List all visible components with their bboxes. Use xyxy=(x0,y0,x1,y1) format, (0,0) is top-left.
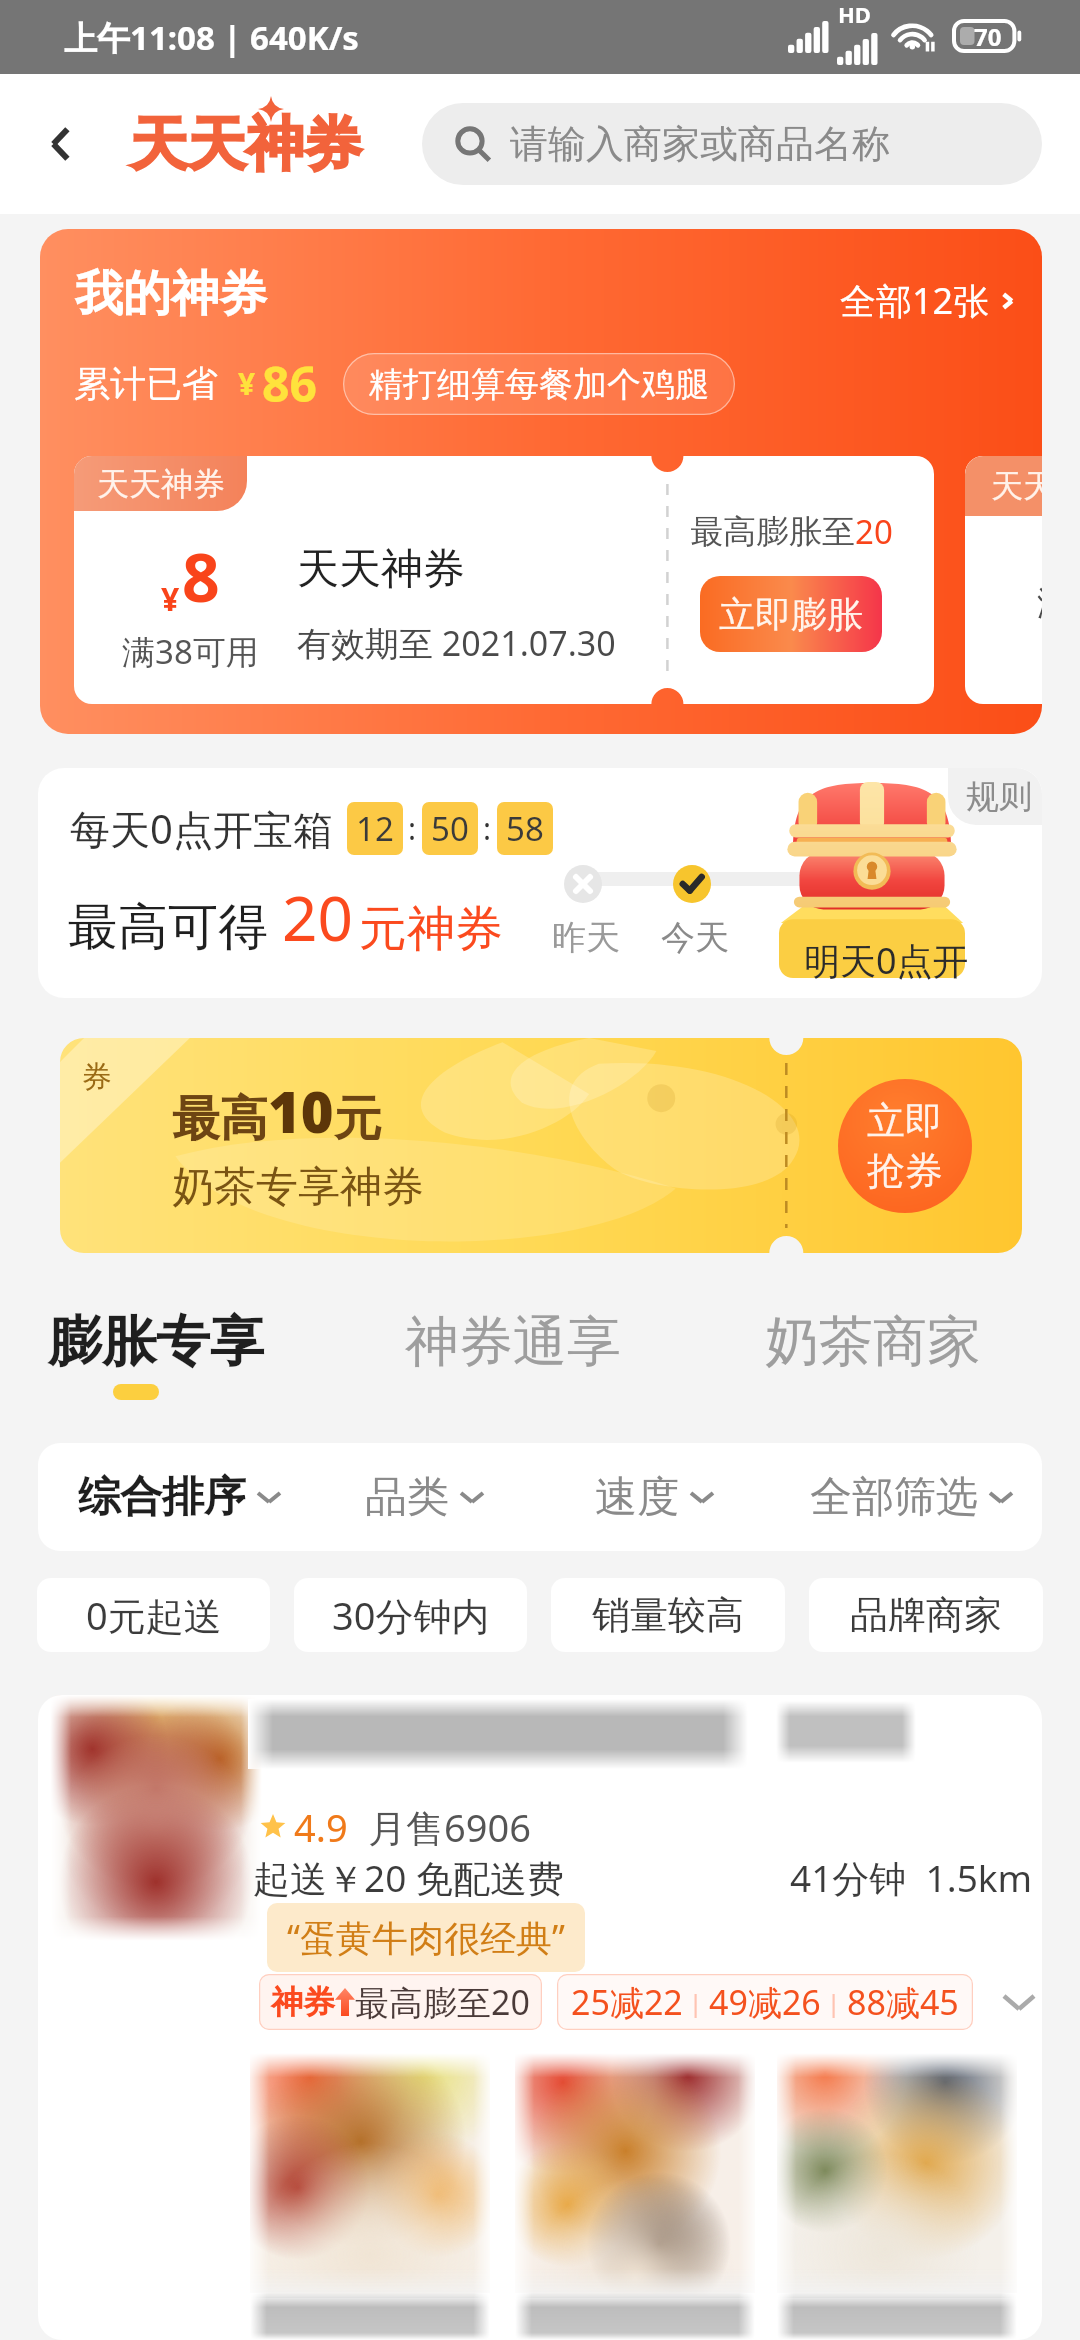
staticText: | xyxy=(689,1986,703,2019)
button[interactable]: 展开更多优惠 xyxy=(991,1974,1042,2030)
staticText: 累计已省 xyxy=(74,361,218,406)
button[interactable]: 全部12张 xyxy=(840,276,1020,325)
staticText: 上午11:08 | 640K/s xyxy=(64,15,359,60)
button[interactable]: 天天神券 8元优惠券 xyxy=(74,456,934,704)
staticText: 30分钟内 xyxy=(332,1589,490,1641)
button[interactable]: 奶茶商家 xyxy=(765,1296,981,1384)
staticText: 86 xyxy=(262,351,317,416)
staticText: 速度 xyxy=(595,1471,679,1524)
button[interactable]: 品类 xyxy=(365,1443,485,1551)
staticText: 最高可得 xyxy=(68,896,268,959)
staticText: 8 xyxy=(182,531,220,621)
staticText: : xyxy=(408,808,417,849)
staticText: 12 xyxy=(356,806,394,851)
staticText: : xyxy=(483,808,492,849)
staticText: 抢券 xyxy=(867,1147,943,1195)
staticText: 最高膨胀至 xyxy=(690,511,855,553)
button[interactable]: 速度 xyxy=(595,1443,715,1551)
staticText: 请输入商家或商品名称 xyxy=(510,120,890,168)
button[interactable]: 下一张神券 xyxy=(965,456,1042,704)
staticText: 25减22 xyxy=(571,1979,683,2025)
staticText: 全部12张 xyxy=(840,276,990,325)
button[interactable]: 立即 xyxy=(838,1079,972,1213)
staticText: ¥ xyxy=(161,577,180,621)
staticText: 膨胀专享 xyxy=(48,1308,264,1376)
staticText: 满38可用 xyxy=(122,629,259,674)
staticText: 元神券 xyxy=(359,899,503,959)
staticText: 最高膨至20 xyxy=(355,1979,530,2025)
staticText: 50 xyxy=(431,806,469,851)
button[interactable]: 请输入商家或商品名称 xyxy=(422,103,1042,185)
staticText: “蛋黄牛肉很经典” xyxy=(287,1913,565,1962)
staticText: 全部筛选 xyxy=(810,1471,978,1524)
staticText: 规则 xyxy=(966,776,1032,818)
button[interactable]: 品牌商家 xyxy=(809,1578,1043,1652)
button[interactable]: 4.9 xyxy=(38,1695,1042,2340)
staticText: 立即 xyxy=(867,1097,943,1145)
staticText: 天天神券 xyxy=(97,464,225,504)
button[interactable]: 0元起送 xyxy=(37,1578,270,1652)
staticText: 品类 xyxy=(365,1471,449,1524)
staticText: 49减26 xyxy=(709,1979,821,2025)
button[interactable]: 膨胀专享 xyxy=(48,1296,264,1400)
staticText: 58 xyxy=(506,806,544,851)
staticText: 我的神券 xyxy=(75,264,267,324)
button[interactable]: 立即膨胀 xyxy=(700,576,882,652)
staticText: 综合排序 xyxy=(78,1471,246,1524)
staticText: 奶茶商家 xyxy=(765,1308,981,1376)
staticText: 明天0点开 xyxy=(804,936,969,985)
staticText: 有效期至 2021.07.30 xyxy=(297,620,616,666)
staticText: 券 xyxy=(82,1058,112,1096)
staticText: 昨天 xyxy=(552,916,620,959)
button[interactable]: 30分钟内 xyxy=(294,1578,527,1652)
staticText: 88减45 xyxy=(847,1979,959,2025)
button[interactable]: Back xyxy=(22,105,100,183)
button[interactable]: 券 xyxy=(60,1038,1022,1253)
staticText: 天天神券 xyxy=(130,108,362,181)
staticText: 元 xyxy=(334,1089,382,1149)
button[interactable]: 神券通享 xyxy=(405,1296,621,1384)
staticText: 每天0点开宝箱 xyxy=(70,801,333,856)
staticText: 今天 xyxy=(661,916,729,959)
staticText: 天天神券 xyxy=(991,466,1042,506)
button[interactable]: 全部筛选 xyxy=(810,1443,1014,1551)
staticText: 起送￥20 免配送费 xyxy=(253,1852,564,1903)
button[interactable]: 规则 xyxy=(948,768,1042,825)
staticText: 20 xyxy=(282,875,353,959)
staticText: 41分钟 1.5km xyxy=(790,1852,1033,1903)
staticText: 神券通享 xyxy=(405,1308,621,1376)
staticText: HD xyxy=(838,0,871,29)
staticText: 0元起送 xyxy=(86,1589,222,1641)
staticText: 销量较高 xyxy=(592,1591,744,1639)
staticText: 10 xyxy=(268,1073,334,1149)
staticText: 精打细算每餐加个鸡腿 xyxy=(369,363,709,406)
staticText: | xyxy=(827,1986,841,2019)
staticText: 20 xyxy=(855,509,893,554)
staticText: 最高 xyxy=(172,1089,268,1149)
staticText: 天天神券 xyxy=(297,543,465,596)
staticText: 4.9 xyxy=(294,1801,348,1853)
button[interactable]: 综合排序 xyxy=(78,1443,282,1551)
staticText: 神券 xyxy=(271,1982,335,2022)
staticText: 月售6906 xyxy=(368,1801,531,1853)
staticText: ¥ xyxy=(238,363,256,404)
staticText: 满38可用 xyxy=(1037,579,1042,625)
staticText: 奶茶专享神券 xyxy=(172,1161,424,1214)
button[interactable]: 销量较高 xyxy=(551,1578,785,1652)
staticText: 立即膨胀 xyxy=(719,592,863,637)
staticText: 品牌商家 xyxy=(850,1591,1002,1639)
staticText: 70 xyxy=(974,20,1002,53)
